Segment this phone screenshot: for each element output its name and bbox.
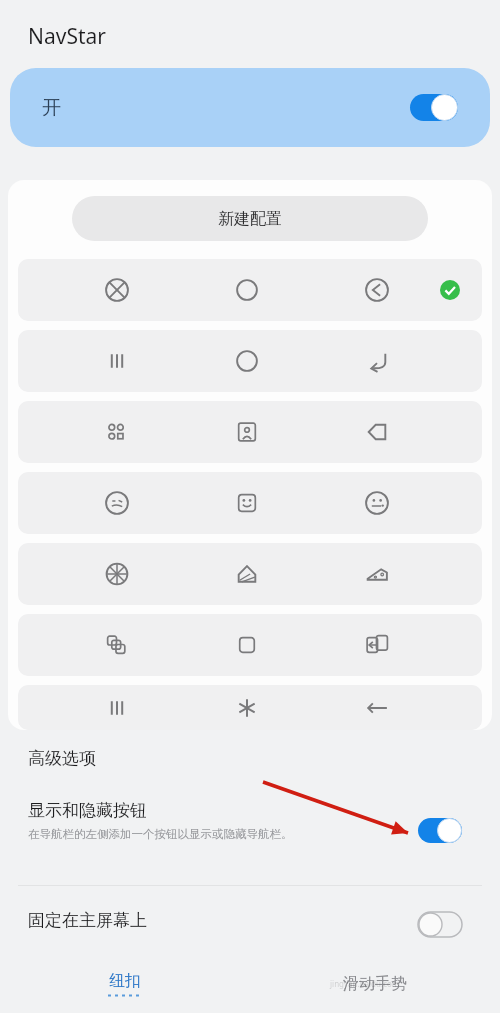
button[interactable] [18,685,482,730]
button[interactable] [18,330,482,392]
staticText: 固定在主屏幕上 [28,910,147,931]
button[interactable] [18,472,482,534]
staticText: NavStar [28,22,106,51]
button[interactable]: 新建配置 [72,196,428,241]
staticText: 在导航栏的左侧添加一个按钮以显示或隐藏导航栏。 [28,827,293,841]
staticText: 开 [42,96,61,120]
button[interactable]: 开 [10,68,490,147]
button[interactable]: 纽扣 [0,955,250,1013]
button[interactable]: 滑动手势 [250,955,500,1013]
button[interactable] [18,259,482,321]
button[interactable] [18,401,482,463]
staticText: jingyan.baidu.com [330,978,400,989]
button[interactable]: Pin to home screen toggle [418,912,462,937]
button[interactable] [18,543,482,605]
button[interactable]: 固定在主屏幕上 [0,900,500,955]
button[interactable]: Enable NavStar [410,94,458,121]
button[interactable] [18,614,482,676]
staticText: 高级选项 [28,748,96,769]
staticText: 滑动手势 [343,974,407,994]
button[interactable]: 显示和隐藏按钮 [0,790,500,890]
staticText: 新建配置 [218,209,282,229]
staticText: 纽扣 [109,971,141,991]
staticText: 显示和隐藏按钮 [28,800,147,821]
button[interactable]: Show and hide button toggle [418,818,462,843]
